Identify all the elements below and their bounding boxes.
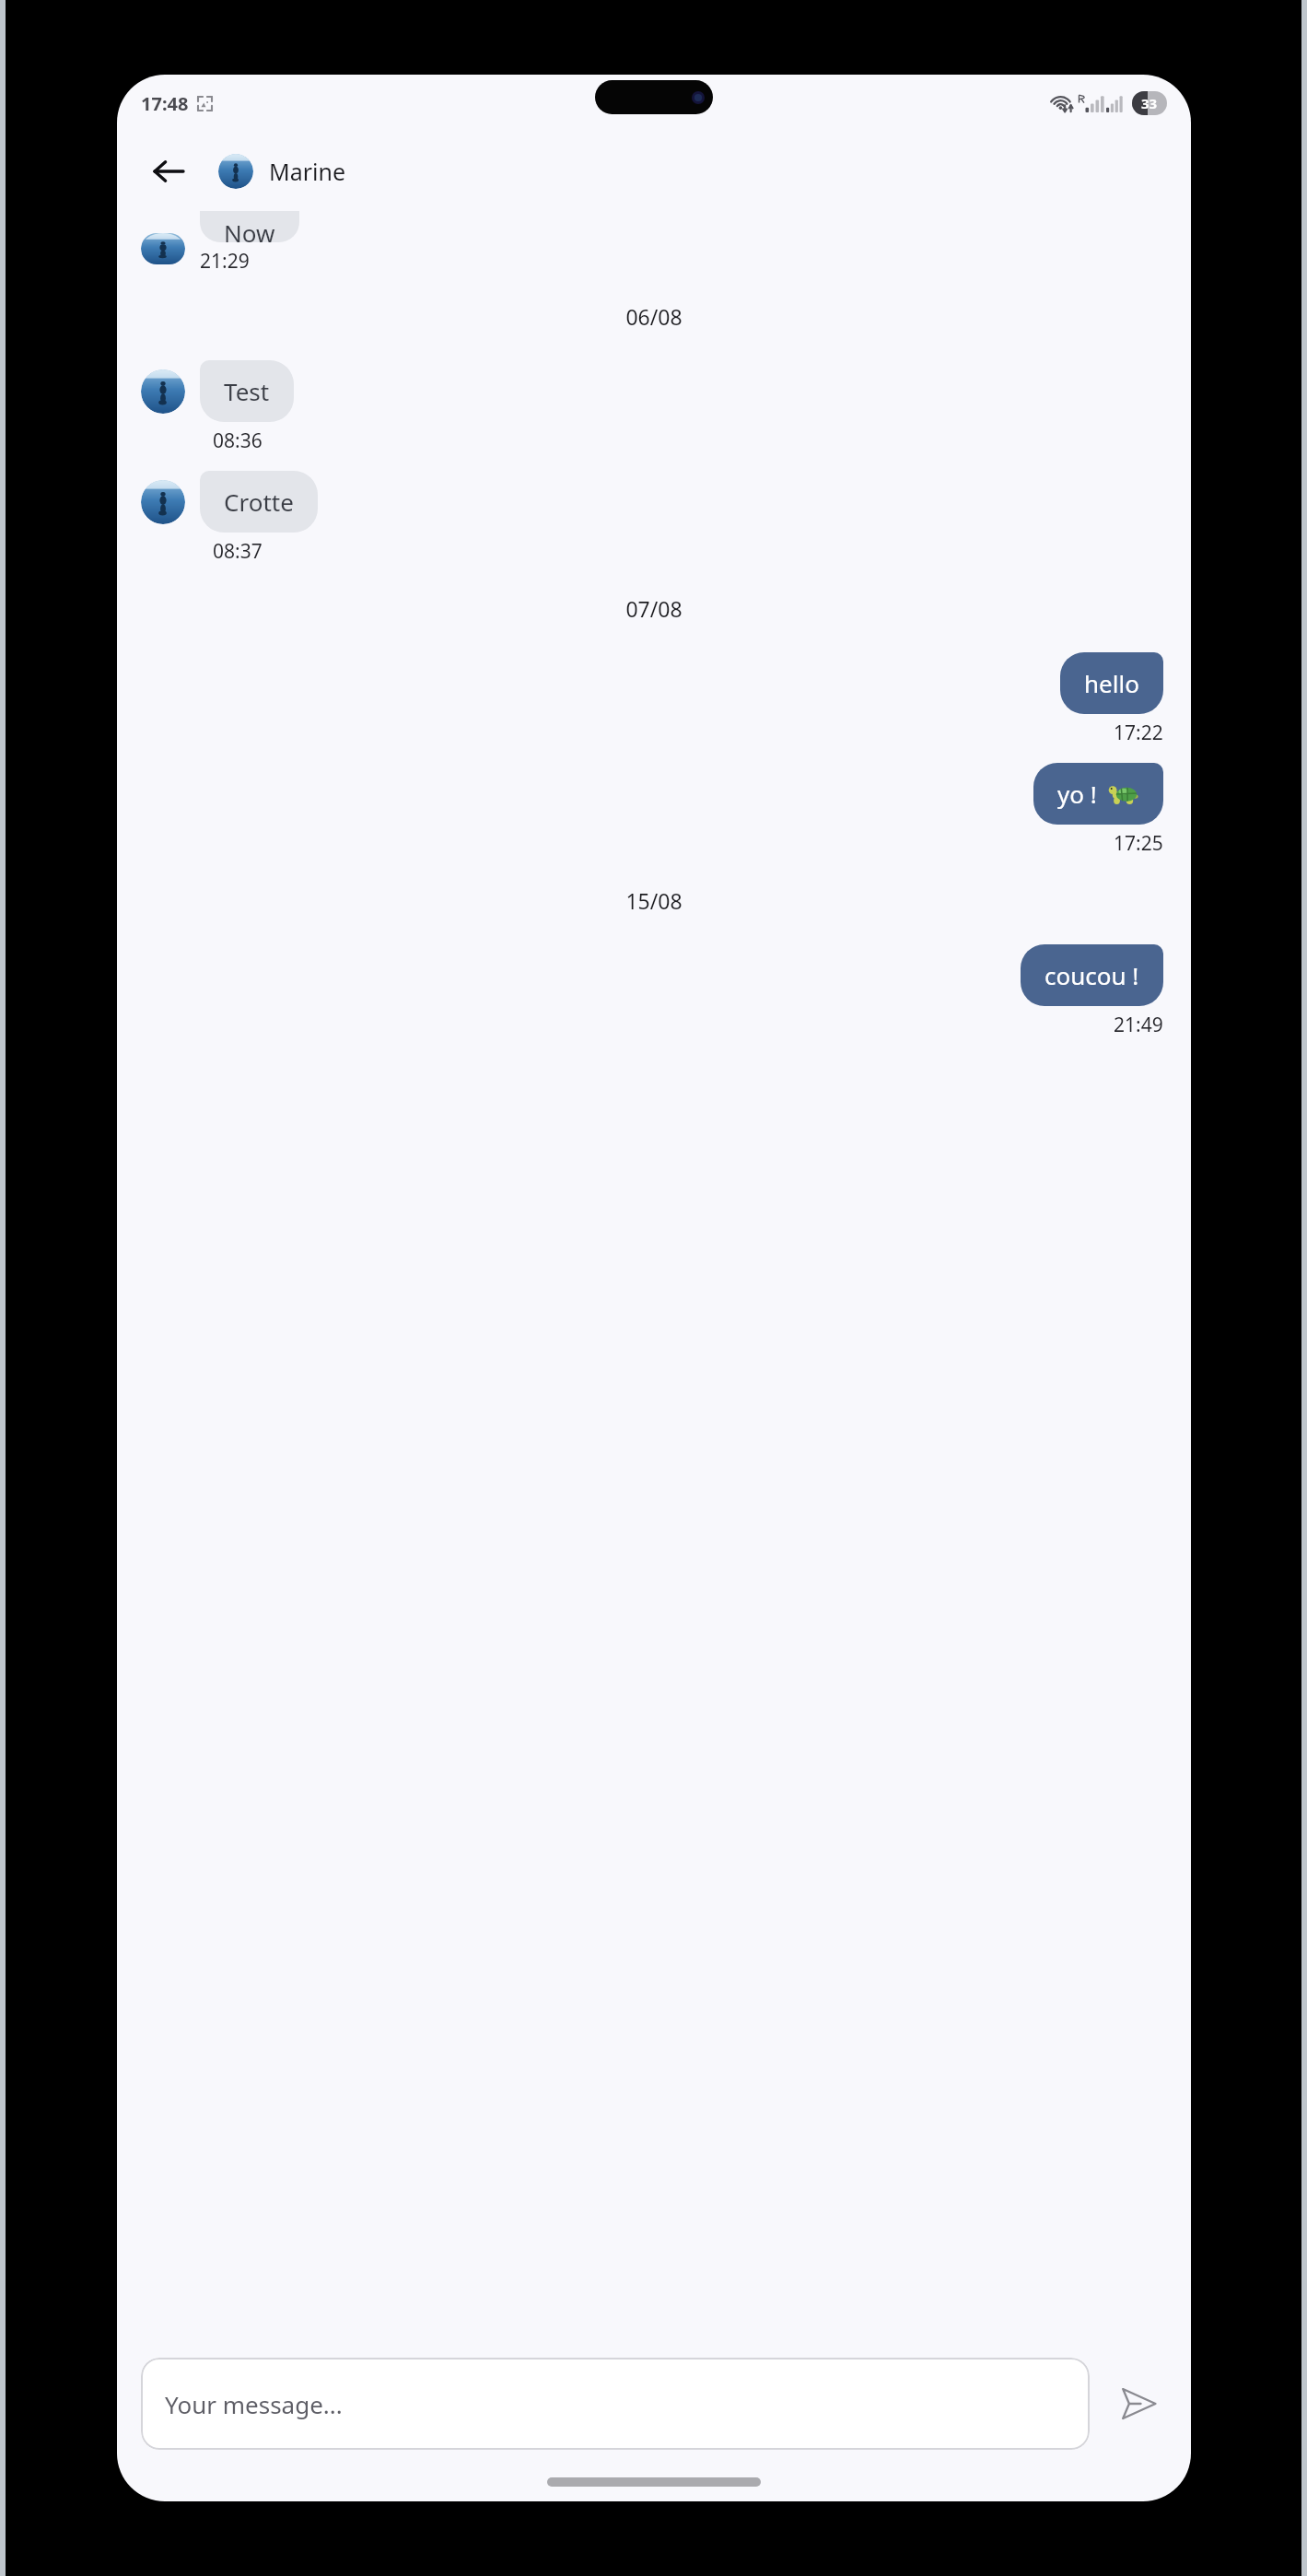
staticText: hello bbox=[1084, 667, 1139, 699]
staticText: Your message... bbox=[165, 2388, 343, 2420]
button[interactable]: Crotte bbox=[200, 471, 318, 533]
button[interactable]: Marine bbox=[218, 154, 346, 189]
staticText: 17:25 bbox=[1114, 830, 1163, 857]
staticText: 17:48 bbox=[141, 91, 189, 116]
button[interactable]: Test bbox=[200, 360, 294, 422]
button[interactable]: coucou ! bbox=[1021, 944, 1163, 1006]
button[interactable]: hello bbox=[1060, 652, 1163, 714]
staticText: 06/08 bbox=[625, 302, 683, 331]
staticText: Crotte bbox=[224, 486, 294, 518]
staticText: 15/08 bbox=[625, 886, 683, 915]
staticText: 33 bbox=[1141, 94, 1158, 112]
button[interactable]: Back bbox=[139, 142, 198, 201]
button[interactable]: yo ! bbox=[1033, 763, 1163, 825]
staticText: Test bbox=[224, 375, 270, 407]
staticText: Marine bbox=[269, 156, 346, 187]
staticText: coucou ! bbox=[1044, 959, 1139, 991]
staticText: Now bbox=[224, 217, 275, 242]
staticText: 07/08 bbox=[625, 594, 683, 623]
staticText: 17:22 bbox=[1114, 720, 1163, 746]
staticText: 08:36 bbox=[213, 427, 263, 454]
button[interactable]: Send bbox=[1106, 2371, 1171, 2436]
staticText: 08:37 bbox=[213, 538, 263, 565]
staticText: 21:29 bbox=[200, 248, 250, 275]
button[interactable]: Your message... bbox=[141, 2358, 1090, 2450]
staticText: yo ! bbox=[1057, 778, 1097, 810]
staticText: 21:49 bbox=[1114, 1012, 1163, 1038]
